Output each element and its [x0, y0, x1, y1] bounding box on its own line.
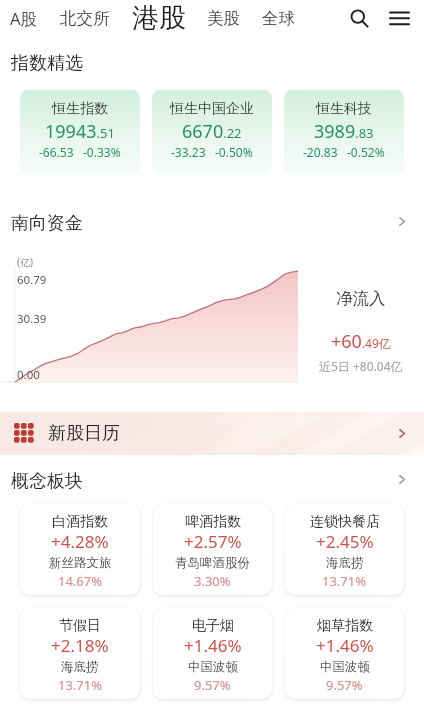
- staticText: 60.79: [17, 272, 47, 288]
- staticText: 海底捞: [61, 659, 99, 675]
- staticText: 指数精选: [11, 52, 83, 75]
- staticText: -66.53: [39, 144, 74, 160]
- button[interactable]: 节假日: [20, 608, 140, 699]
- staticText: +60.49亿: [331, 329, 391, 354]
- button[interactable]: 全球: [256, 8, 301, 29]
- button[interactable]: Menu: [382, 1, 416, 35]
- staticText: 0.00: [17, 367, 40, 383]
- staticText: 电子烟: [192, 617, 234, 635]
- staticText: 青岛啤酒股份: [175, 555, 250, 571]
- staticText: 近5日 +80.04亿: [319, 358, 403, 374]
- staticText: -0.33%: [83, 144, 121, 160]
- staticText: 9.57%: [326, 676, 363, 694]
- button[interactable]: 烟草指数: [285, 608, 404, 699]
- staticText: 新股日历: [48, 422, 120, 445]
- button[interactable]: 电子烟: [153, 608, 272, 699]
- staticText: 恒生科技: [316, 100, 372, 118]
- staticText: +2.57%: [184, 530, 242, 553]
- staticText: 新丝路文旅: [49, 555, 112, 571]
- button[interactable]: 恒生中国企业: [152, 90, 272, 174]
- staticText: (亿): [17, 255, 33, 269]
- staticText: 南向资金: [11, 212, 83, 235]
- button[interactable]: 恒生科技: [284, 90, 404, 174]
- staticText: 13.71%: [322, 572, 367, 590]
- staticText: -0.50%: [215, 144, 253, 160]
- staticText: 6670.22: [182, 119, 242, 144]
- button[interactable]: 北交所: [54, 8, 116, 29]
- staticText: 30.39: [17, 311, 47, 327]
- staticText: 净流入: [336, 288, 386, 309]
- staticText: 美股: [207, 8, 240, 29]
- button[interactable]: 白酒指数: [20, 504, 140, 595]
- button[interactable]: 美股: [201, 8, 246, 29]
- staticText: 恒生指数: [52, 100, 108, 118]
- staticText: 节假日: [59, 617, 101, 635]
- staticText: 14.67%: [58, 572, 103, 590]
- button[interactable]: 概念板块: [0, 464, 424, 494]
- button[interactable]: 南向资金: [0, 206, 424, 236]
- button[interactable]: 港股: [126, 1, 192, 35]
- button[interactable]: 新股日历: [0, 412, 424, 455]
- staticText: 13.71%: [58, 676, 103, 694]
- staticText: 中国波顿: [188, 659, 238, 675]
- staticText: 北交所: [60, 8, 110, 29]
- staticText: +1.46%: [316, 634, 374, 657]
- staticText: +4.28%: [51, 530, 109, 553]
- staticText: 白酒指数: [52, 513, 108, 531]
- staticText: 恒生中国企业: [170, 100, 254, 118]
- staticText: +2.18%: [51, 634, 109, 657]
- staticText: A股: [10, 7, 38, 30]
- button[interactable]: A股: [4, 7, 44, 30]
- staticText: 烟草指数: [317, 617, 373, 635]
- staticText: 9.57%: [194, 676, 231, 694]
- button[interactable]: 啤酒指数: [153, 504, 272, 595]
- staticText: 啤酒指数: [185, 513, 241, 531]
- staticText: 19943.51: [45, 119, 115, 144]
- staticText: +1.46%: [184, 634, 242, 657]
- staticText: 全球: [262, 8, 295, 29]
- staticText: -33.23: [171, 144, 206, 160]
- staticText: 连锁快餐店: [310, 513, 380, 531]
- staticText: 概念板块: [11, 470, 83, 493]
- button[interactable]: 恒生指数: [20, 90, 140, 174]
- staticText: +2.45%: [316, 530, 374, 553]
- button[interactable]: 连锁快餐店: [285, 504, 404, 595]
- staticText: 海底捞: [326, 555, 364, 571]
- staticText: 港股: [132, 1, 186, 35]
- staticText: -0.52%: [347, 144, 385, 160]
- staticText: 3.30%: [194, 572, 231, 590]
- staticText: -20.83: [303, 144, 338, 160]
- staticText: 中国波顿: [320, 659, 370, 675]
- button[interactable]: Search: [342, 1, 376, 35]
- staticText: 3989.83: [314, 119, 374, 144]
